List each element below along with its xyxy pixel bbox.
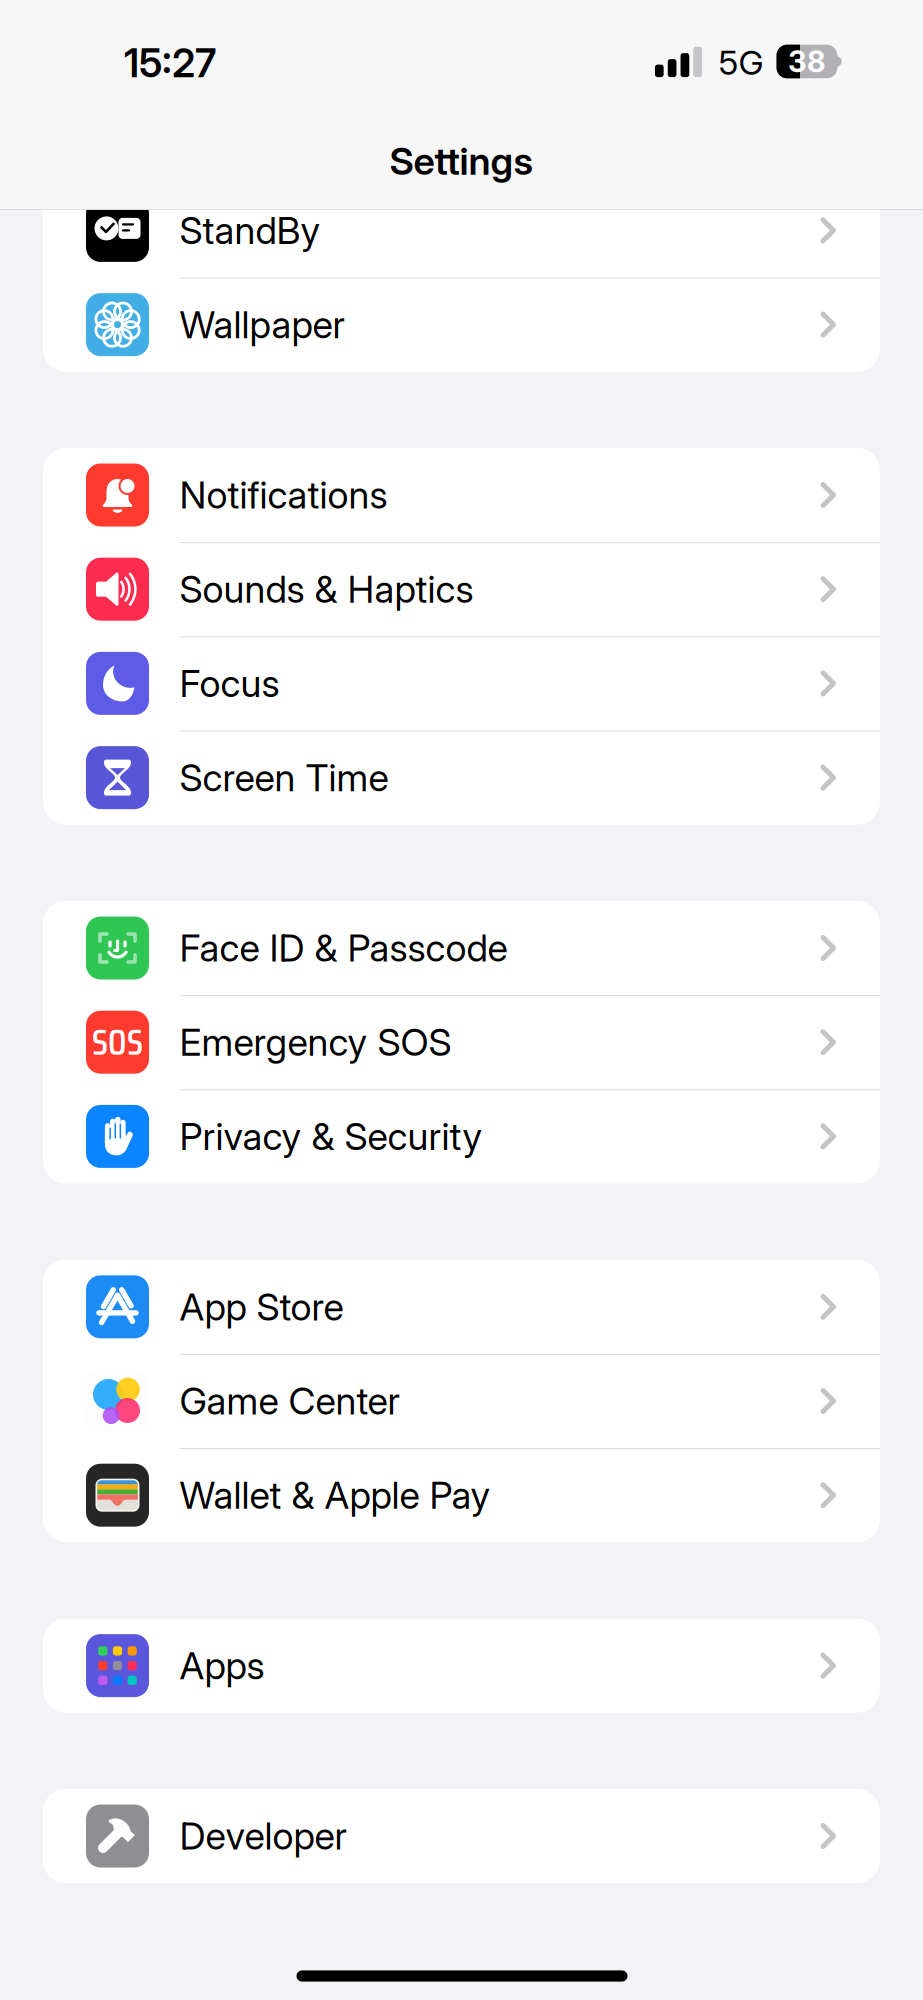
staticText: Face ID & Passcode	[179, 925, 507, 971]
staticText: Focus	[179, 661, 279, 706]
staticText: Wallet & Apple Pay	[179, 1473, 490, 1518]
staticText: 15:27	[124, 39, 216, 87]
button[interactable]: Privacy & Security	[43, 1089, 880, 1183]
staticText: StandBy	[179, 208, 320, 253]
button[interactable]: Apps	[43, 1618, 880, 1713]
staticText: App Store	[179, 1284, 343, 1329]
button[interactable]: Developer	[43, 1789, 880, 1883]
staticText: Emergency SOS	[179, 1020, 451, 1065]
button[interactable]: Game Center	[43, 1354, 880, 1448]
staticText: Notifications	[179, 472, 387, 518]
staticText: Settings	[389, 138, 533, 184]
staticText: Screen Time	[179, 755, 388, 800]
staticText: Game Center	[179, 1378, 399, 1424]
button[interactable]: Face ID & Passcode	[43, 901, 880, 995]
button[interactable]: Notifications	[43, 448, 880, 542]
button[interactable]: StandBy	[43, 183, 880, 277]
staticText: Sounds & Haptics	[179, 567, 473, 612]
staticText: 5G	[719, 42, 764, 83]
staticText: Developer	[179, 1813, 346, 1859]
button[interactable]: SOS	[43, 995, 880, 1089]
staticText: 38	[788, 44, 826, 79]
button[interactable]: Focus	[43, 636, 880, 730]
staticText: Apps	[179, 1643, 264, 1688]
button[interactable]: Screen Time	[43, 730, 880, 825]
button[interactable]: Wallpaper	[43, 277, 880, 372]
button[interactable]: App Store	[43, 1260, 880, 1354]
button[interactable]: Sounds & Haptics	[43, 542, 880, 636]
button[interactable]: Wallet & Apple Pay	[43, 1448, 880, 1542]
staticText: Privacy & Security	[179, 1114, 482, 1159]
staticText: SOS	[92, 1014, 143, 1071]
staticText: Wallpaper	[179, 302, 344, 347]
